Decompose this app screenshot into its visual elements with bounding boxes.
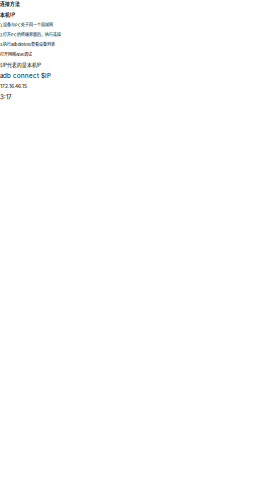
staticText: 本机IP [0, 11, 15, 18]
staticText: 172.16.46.15 [0, 83, 27, 89]
staticText: adb connect $IP [0, 72, 51, 79]
staticText: 2.打开PC的终端界面后，执行连接 [0, 32, 61, 37]
staticText: 3.执行adb devices查看设备列表 [0, 41, 55, 47]
staticText: 打开网络ADB调试 [0, 51, 32, 57]
staticText: 连接方法 [0, 0, 20, 7]
staticText: 3:17 [0, 93, 11, 101]
staticText: $IP代表的是本机IP [0, 61, 41, 68]
staticText: 1.设备与PC处于同一个局域网 [0, 22, 53, 28]
